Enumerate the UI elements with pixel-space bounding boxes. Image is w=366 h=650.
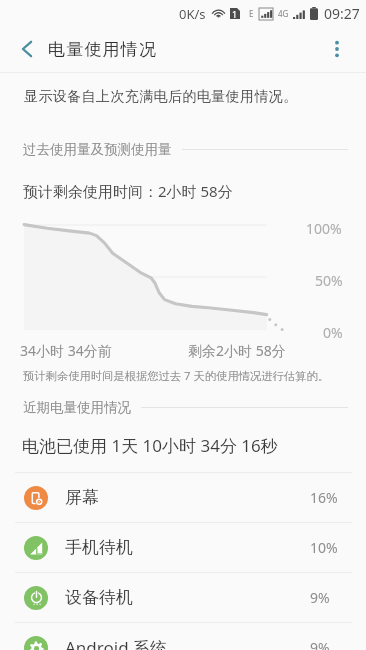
staticText: 电量使用情况	[48, 39, 158, 60]
staticText: 电池已使用 1天 10小时 34分 16秒	[22, 434, 278, 457]
staticText: Android 系统	[65, 636, 168, 650]
button[interactable]: 设备待机	[0, 573, 366, 622]
staticText: 屏幕	[65, 487, 99, 508]
staticText: 显示设备自上次充满电后的电量使用情况。	[24, 88, 298, 106]
staticText: 09:27	[324, 4, 360, 23]
button[interactable]: Back	[0, 26, 54, 72]
staticText: 手机待机	[65, 537, 133, 558]
button[interactable]: More options	[320, 26, 353, 72]
staticText: 10%	[310, 538, 338, 557]
staticText: 过去使用量及预测使用量	[23, 141, 172, 158]
staticText: 近期电量使用情况	[23, 399, 131, 416]
staticText: 100%	[306, 219, 342, 238]
staticText: 设备待机	[65, 587, 133, 608]
button[interactable]: 屏幕	[0, 473, 366, 522]
staticText: 9%	[310, 638, 330, 650]
button[interactable]: 手机待机	[0, 523, 366, 572]
staticText: 1	[232, 8, 238, 19]
staticText: 预计剩余使用时间是根据您过去 7 天的使用情况进行估算的。	[23, 368, 330, 383]
staticText: E	[249, 8, 254, 19]
staticText: 50%	[315, 271, 343, 290]
staticText: 16%	[310, 488, 338, 507]
staticText: 0K/s	[179, 5, 206, 23]
staticText: 预计剩余使用时间：2小时 58分	[23, 181, 233, 201]
staticText: 34小时 34分前	[20, 341, 112, 360]
staticText: 0%	[323, 323, 343, 342]
staticText: 剩余2小时 58分	[188, 341, 286, 360]
staticText: 9%	[310, 588, 330, 607]
button[interactable]: Android 系统	[0, 623, 366, 650]
staticText: 4G	[278, 8, 289, 19]
